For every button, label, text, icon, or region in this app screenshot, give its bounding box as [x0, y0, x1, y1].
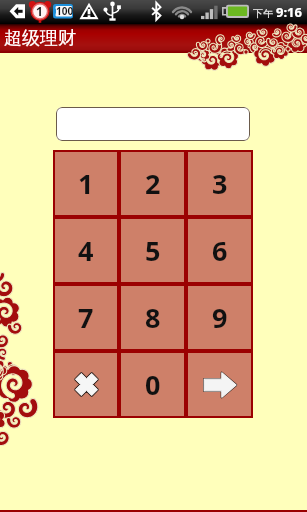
staticText: 2 [145, 165, 161, 202]
staticText: 1 [78, 165, 94, 202]
staticText: 8 [145, 299, 161, 336]
button[interactable]: 5 [121, 219, 184, 282]
button[interactable]: 2 [121, 152, 184, 215]
staticText: 1 [36, 3, 43, 19]
staticText: 下午 [253, 7, 273, 20]
button[interactable] [56, 107, 250, 141]
staticText: 超级理财 [4, 27, 76, 50]
staticText: 6 [212, 232, 228, 269]
staticText: 0 [145, 366, 161, 403]
other: Clear [75, 373, 98, 396]
button[interactable]: 9 [188, 286, 251, 349]
staticText: 4 [78, 232, 94, 269]
staticText: 100 [56, 4, 74, 18]
other: Enter [200, 365, 240, 405]
button[interactable]: 3 [188, 152, 251, 215]
staticText: 9 [212, 299, 228, 336]
button[interactable]: 1 [55, 152, 117, 215]
button[interactable]: 4 [55, 219, 117, 282]
staticText: 3 [212, 165, 228, 202]
button[interactable]: 8 [121, 286, 184, 349]
staticText: 5 [145, 232, 161, 269]
button[interactable]: 6 [188, 219, 251, 282]
staticText: 9:16 [276, 3, 302, 21]
button[interactable]: 7 [55, 286, 117, 349]
button[interactable]: Enter [188, 353, 251, 416]
button[interactable]: 0 [121, 353, 184, 416]
staticText: 7 [78, 299, 94, 336]
button[interactable]: Clear [55, 353, 117, 416]
